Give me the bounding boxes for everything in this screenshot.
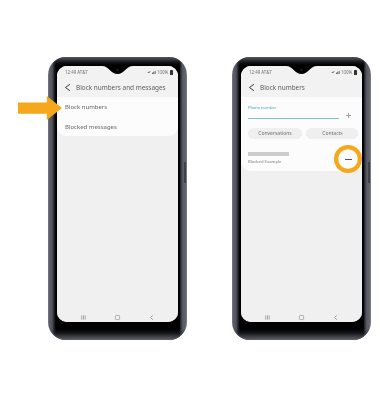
button[interactable]: Contacts xyxy=(306,128,358,139)
button[interactable]: Conversations xyxy=(248,128,302,139)
staticText: 12:49 AT&T xyxy=(249,69,272,75)
staticText: Conversations xyxy=(258,130,292,137)
button[interactable]: Block numbers xyxy=(57,97,178,117)
staticText: Blocked messages xyxy=(65,123,117,131)
staticText: 12:49 AT&T xyxy=(65,69,88,75)
staticText: Blocked Example xyxy=(248,159,282,165)
button[interactable]: Recents xyxy=(264,314,271,321)
button[interactable]: Recents xyxy=(80,314,87,321)
staticText: 100% xyxy=(341,69,353,75)
staticText: Phone number xyxy=(248,105,277,110)
button[interactable]: Blocked messages xyxy=(57,117,178,136)
staticText: Block numbers and messages xyxy=(76,83,166,92)
staticText: Block numbers xyxy=(260,83,305,92)
button[interactable]: Back xyxy=(148,314,155,321)
staticText: Block numbers xyxy=(65,103,108,111)
button[interactable]: Remove blocked number xyxy=(342,153,355,166)
staticText: 100% xyxy=(157,69,169,75)
button[interactable]: Navigate up xyxy=(59,78,75,97)
button[interactable]: Navigate up xyxy=(243,78,259,97)
staticText: Contacts xyxy=(322,130,343,137)
button[interactable]: Add contact xyxy=(344,111,353,120)
button[interactable]: Home xyxy=(298,314,305,321)
button[interactable]: Home xyxy=(114,314,121,321)
button[interactable]: Back xyxy=(332,314,339,321)
